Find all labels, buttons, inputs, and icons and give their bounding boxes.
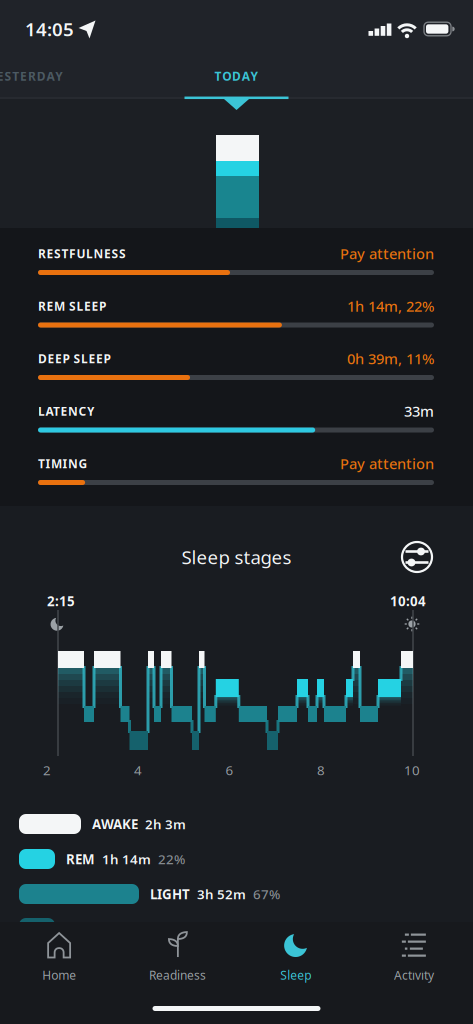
button[interactable]: TODAY bbox=[184, 61, 288, 91]
button[interactable]: Readiness bbox=[118, 922, 236, 990]
button[interactable]: Home bbox=[0, 922, 118, 990]
staticText: LIGHT bbox=[150, 885, 190, 903]
staticText: 1h 14m, 22% bbox=[347, 296, 434, 316]
staticText: 33m bbox=[404, 401, 434, 421]
staticText: Activity bbox=[394, 967, 434, 983]
staticText: 0h 39m, 11% bbox=[347, 349, 434, 368]
staticText: Pay attention bbox=[340, 244, 434, 263]
staticText: 4 bbox=[134, 761, 142, 779]
staticText: REM SLEEP bbox=[38, 298, 106, 314]
staticText: 67% bbox=[253, 885, 280, 903]
staticText: Sleep stages bbox=[181, 545, 291, 569]
staticText: 22% bbox=[158, 850, 185, 868]
button[interactable]: ESTERDAY bbox=[0, 68, 63, 84]
staticText: Sleep bbox=[280, 967, 311, 983]
staticText: 2h 3m bbox=[145, 815, 186, 833]
staticText: 8 bbox=[317, 761, 325, 779]
staticText: TODAY bbox=[214, 68, 259, 84]
staticText: LATENCY bbox=[38, 403, 95, 419]
staticText: 3h 52m bbox=[197, 885, 246, 903]
staticText: Home bbox=[42, 967, 76, 983]
staticText: REM bbox=[66, 850, 95, 868]
staticText: RESTFULNESS bbox=[38, 245, 126, 261]
staticText: DEEP SLEEP bbox=[38, 350, 110, 366]
button[interactable]: Sleep bbox=[236, 922, 355, 990]
staticText: 10:04 bbox=[390, 592, 426, 610]
staticText: AWAKE bbox=[92, 815, 138, 833]
staticText: Readiness bbox=[149, 967, 206, 983]
staticText: 2 bbox=[43, 761, 51, 779]
staticText: ESTERDAY bbox=[0, 68, 63, 84]
staticText: Pay attention bbox=[340, 454, 434, 473]
staticText: 6 bbox=[225, 761, 233, 779]
button[interactable] bbox=[399, 539, 435, 575]
staticText: 10 bbox=[404, 761, 420, 779]
button[interactable]: Activity bbox=[355, 922, 473, 990]
staticText: 1h 14m bbox=[102, 850, 151, 868]
staticText: 2:15 bbox=[47, 592, 75, 610]
staticText: 14:05 bbox=[25, 17, 74, 41]
staticText: TIMING bbox=[38, 455, 87, 471]
